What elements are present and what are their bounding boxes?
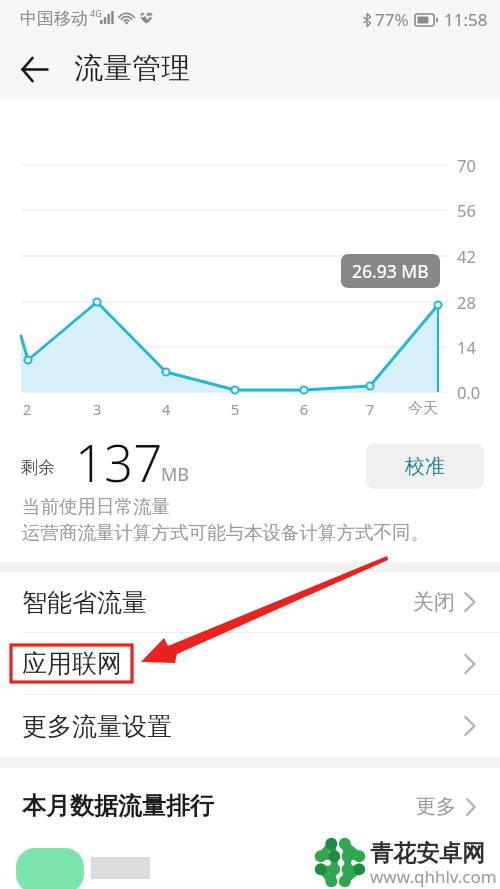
staticText: MB: [161, 462, 190, 487]
staticText: 校准: [405, 454, 445, 479]
staticText: 5: [215, 399, 255, 419]
staticText: 4: [146, 399, 186, 419]
button[interactable]: 更多流量设置: [0, 695, 500, 757]
staticText: 14: [457, 336, 476, 358]
staticText: 4G: [90, 7, 102, 19]
staticText: 11:58: [444, 8, 488, 31]
staticText: 今天: [403, 399, 443, 418]
button[interactable]: 本月数据流量排行: [0, 768, 500, 844]
button[interactable]: 校准: [366, 444, 484, 489]
staticText: 56: [457, 199, 476, 221]
staticText: 2: [7, 399, 47, 419]
staticText: 7: [350, 399, 390, 419]
staticText: 70: [457, 154, 476, 176]
staticText: 运营商流量计算方式可能与本设备计算方式不同。: [22, 521, 429, 544]
button[interactable]: 智能省流量: [0, 572, 500, 633]
staticText: 更多流量设置: [22, 711, 172, 742]
staticText: 42: [457, 245, 476, 267]
staticText: 6: [284, 399, 324, 419]
staticText: 青花安卓网: [370, 839, 485, 868]
staticText: 26.93 MB: [352, 259, 429, 283]
staticText: 0.0: [457, 381, 481, 403]
staticText: 28: [457, 291, 476, 313]
staticText: 流量管理: [74, 50, 190, 87]
staticText: 3: [77, 399, 117, 419]
staticText: 剩余: [21, 457, 55, 478]
staticText: www.qhhlv.com: [370, 865, 497, 888]
staticText: 本月数据流量排行: [22, 791, 214, 821]
staticText: 更多: [416, 794, 456, 819]
button[interactable]: 应用联网: [0, 633, 500, 695]
button[interactable]: Back: [16, 51, 52, 87]
staticText: 关闭: [413, 589, 455, 615]
staticText: 137: [75, 427, 163, 496]
staticText: 当前使用日常流量: [22, 495, 170, 518]
staticText: 77%: [375, 8, 409, 31]
button[interactable]: [0, 844, 500, 889]
staticText: 应用联网: [22, 648, 122, 679]
staticText: 中国移动: [20, 8, 88, 29]
staticText: 智能省流量: [22, 587, 147, 618]
